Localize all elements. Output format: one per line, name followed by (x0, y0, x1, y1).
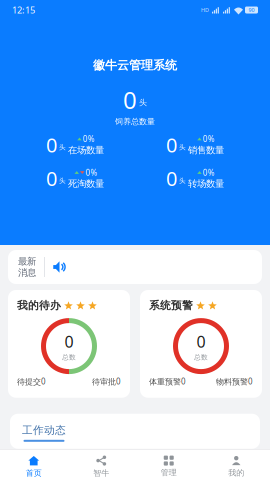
staticText: 系统预警 (149, 299, 193, 312)
staticText: 我的 (228, 468, 244, 478)
staticText: 物料预警0 (216, 376, 253, 387)
staticText: 死淘数量 (68, 178, 104, 189)
button[interactable]: 最新 (8, 250, 262, 284)
staticText: 0% (203, 167, 215, 178)
staticText: 饲养总数量 (115, 117, 155, 126)
staticText: 待提交0 (17, 376, 46, 387)
staticText: 0% (85, 167, 97, 178)
staticText: 头 (59, 143, 66, 151)
staticText: 头 (139, 98, 147, 108)
staticText: 首页 (26, 468, 42, 478)
button[interactable]: 我的待办 (8, 290, 130, 398)
staticText: 销售数量 (188, 144, 224, 156)
staticText: 总数 (62, 353, 76, 361)
button[interactable]: 管理 (135, 450, 202, 480)
staticText: 0 (166, 165, 177, 192)
staticText: 最新 (18, 255, 36, 267)
staticText: 0% (203, 134, 215, 144)
staticText: 我的待办 (17, 299, 61, 312)
staticText: 转场数量 (188, 178, 224, 189)
staticText: 0 (166, 131, 177, 158)
button[interactable]: 系统预警 (140, 290, 262, 398)
staticText: 在场数量 (68, 144, 104, 156)
staticText: 待审批0 (92, 376, 121, 387)
staticText: 12:15 (12, 4, 35, 16)
staticText: 0 (64, 331, 73, 352)
staticText: 0% (83, 134, 95, 144)
button[interactable]: 我的 (202, 450, 270, 480)
staticText: 90 (248, 6, 254, 14)
staticText: 总数 (194, 353, 208, 361)
staticText: 智牛 (93, 468, 109, 478)
staticText: 头 (179, 177, 186, 185)
staticText: 消息 (18, 267, 36, 278)
button[interactable]: 智牛 (67, 450, 135, 480)
staticText: 头 (179, 143, 186, 151)
staticText: 0 (123, 84, 137, 116)
staticText: 徽牛云管理系统 (93, 58, 177, 73)
staticText: 体重预警0 (149, 376, 186, 387)
staticText: 工作动态 (22, 424, 66, 437)
staticText: 0 (196, 331, 205, 352)
staticText: 0 (46, 165, 57, 192)
staticText: 管理 (161, 468, 177, 477)
staticText: 0 (46, 131, 57, 158)
button[interactable]: 工作动态 (10, 414, 66, 442)
staticText: 头 (59, 177, 66, 185)
button[interactable]: 首页 (0, 450, 67, 480)
staticText: HD (201, 6, 209, 14)
